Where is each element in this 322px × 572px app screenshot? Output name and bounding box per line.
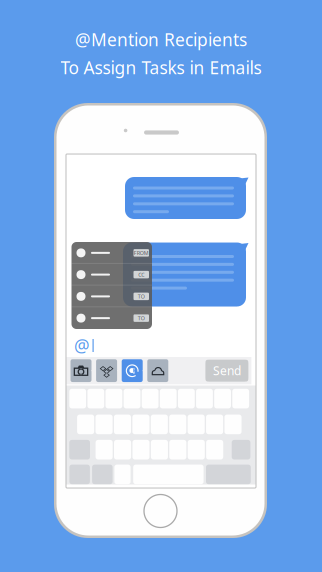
staticText: Send: [213, 363, 241, 379]
button[interactable]: Key: [224, 415, 242, 434]
staticText: @: [74, 334, 90, 357]
button[interactable]: Dropbox: [96, 359, 117, 382]
button[interactable]: Key: [206, 440, 223, 459]
button[interactable]: Mention: [122, 359, 143, 382]
button[interactable]: Key: [132, 440, 149, 459]
button[interactable]: Send: [205, 360, 248, 382]
button[interactable]: Home: [144, 494, 177, 527]
staticText: FROM: [134, 249, 149, 256]
staticText: TO: [138, 293, 145, 300]
button[interactable]: Key: [114, 440, 131, 459]
button[interactable]: Key: [132, 415, 149, 434]
button[interactable]: CC: [71, 264, 152, 286]
button[interactable]: Camera: [70, 359, 91, 382]
button[interactable]: Key: [96, 440, 113, 459]
button[interactable]: FROM: [71, 242, 152, 264]
staticText: TO: [138, 315, 145, 322]
staticText: CC: [138, 271, 144, 278]
staticText: @Mention Recipients: [75, 28, 247, 51]
staticText: To Assign Tasks in Emails: [60, 56, 261, 79]
button[interactable]: Key: [114, 465, 131, 484]
button[interactable]: TO: [71, 307, 152, 329]
button[interactable]: Key: [151, 440, 168, 459]
button[interactable]: Key: [69, 440, 90, 459]
button[interactable]: Key: [169, 440, 186, 459]
button[interactable]: Key: [188, 440, 205, 459]
button[interactable]: Cloud: [147, 359, 168, 382]
button[interactable]: TO: [71, 285, 152, 307]
